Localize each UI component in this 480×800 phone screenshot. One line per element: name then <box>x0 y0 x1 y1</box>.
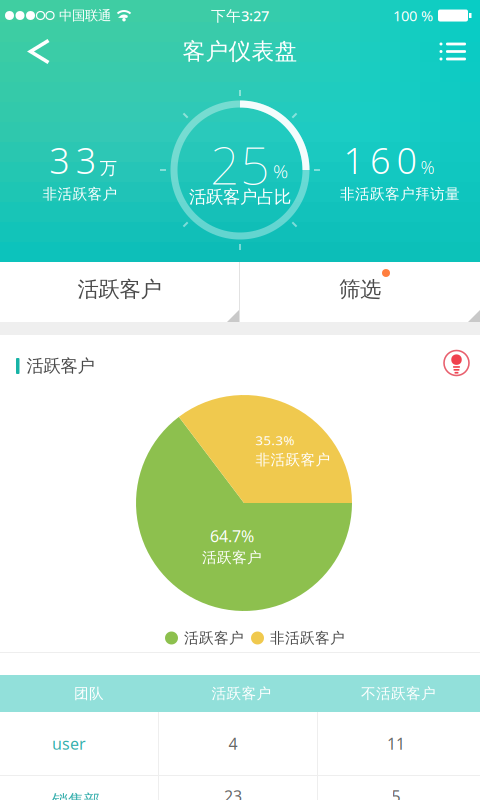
staticText: 团队 <box>74 684 104 702</box>
staticText: 5 <box>391 785 400 800</box>
staticText: 下午3:27 <box>211 6 269 25</box>
staticText: 活跃客户 <box>77 276 161 303</box>
staticText: 33 <box>49 136 97 184</box>
staticText: 活跃客户占比 <box>189 186 291 208</box>
staticText: 非活跃客户拜访量 <box>340 185 460 203</box>
button[interactable]: Tips <box>444 350 480 375</box>
staticText: 35.3% <box>255 431 294 449</box>
staticText: 非活跃客户 <box>255 451 330 469</box>
staticText: 4 <box>228 733 237 754</box>
staticText: 23 <box>224 785 242 800</box>
button[interactable]: 销售部 <box>0 776 480 800</box>
button[interactable]: Menu <box>439 32 480 70</box>
staticText: 中国联通 <box>59 7 111 24</box>
staticText: 客户仪表盘 <box>182 38 297 65</box>
staticText: % <box>273 159 288 183</box>
staticText: 万 <box>100 158 117 179</box>
staticText: 11 <box>387 733 405 754</box>
button[interactable]: 筛选 <box>240 262 480 322</box>
staticText: 64.7% <box>210 525 254 547</box>
staticText: % <box>420 156 434 179</box>
staticText: 不活跃客户 <box>361 684 436 702</box>
staticText: 销售部 <box>52 791 100 800</box>
staticText: 非活跃客户 <box>270 629 345 647</box>
staticText: 活跃客户 <box>211 684 271 702</box>
staticText: 100 % <box>393 6 433 25</box>
staticText: 活跃客户 <box>26 355 94 377</box>
button[interactable]: user <box>0 712 480 775</box>
staticText: 25 <box>210 130 270 199</box>
staticText: 活跃客户 <box>202 549 262 567</box>
staticText: 160 <box>343 136 417 184</box>
staticText: 筛选 <box>339 276 381 303</box>
staticText: user <box>52 733 86 754</box>
button[interactable]: Back <box>0 28 51 74</box>
button[interactable]: 活跃客户 <box>0 262 239 322</box>
staticText: 活跃客户 <box>184 629 244 647</box>
staticText: 非活跃客户 <box>42 185 117 203</box>
